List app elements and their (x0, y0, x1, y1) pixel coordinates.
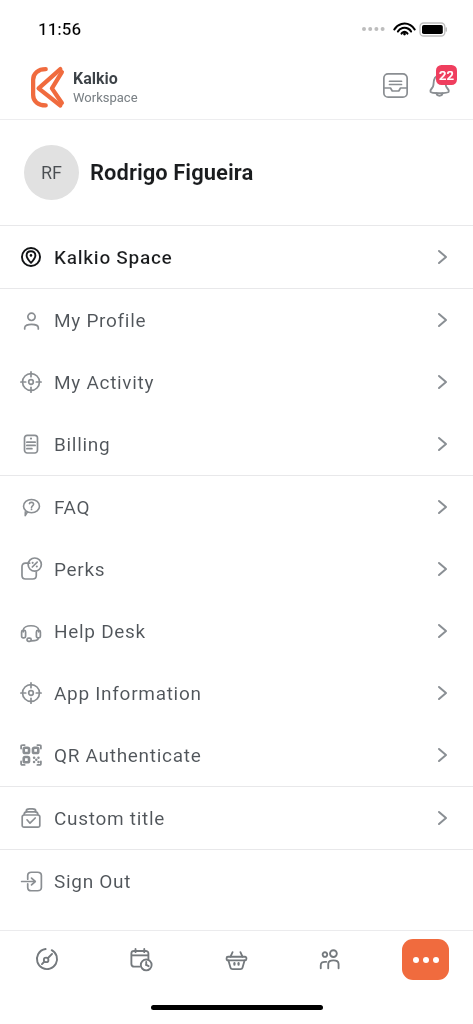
staticText: Perks (54, 558, 106, 580)
staticText: Kalkio (73, 69, 118, 88)
staticText: 22 (439, 68, 454, 83)
button[interactable]: Contacts (308, 934, 352, 984)
button[interactable]: Sign Out (0, 850, 473, 912)
button[interactable]: Custom title (0, 787, 473, 849)
button[interactable]: App Information (0, 662, 473, 724)
staticText: QR Authenticate (54, 744, 202, 766)
staticText: Custom title (54, 807, 166, 829)
button[interactable]: Schedule (119, 934, 163, 984)
staticText: 11:56 (38, 19, 82, 39)
button[interactable]: More (402, 939, 449, 980)
staticText: Billing (54, 433, 111, 455)
button[interactable]: QR Authenticate (0, 724, 473, 786)
button[interactable]: Notifications (428, 64, 458, 98)
staticText: App Information (54, 682, 202, 704)
button[interactable]: Dashboard (25, 934, 69, 984)
staticText: Rodrigo Figueira (90, 160, 254, 186)
button[interactable]: My Activity (0, 351, 473, 413)
button[interactable]: Shop (214, 934, 258, 984)
button[interactable]: Perks (0, 538, 473, 600)
button[interactable]: Kalkio Space (0, 226, 473, 288)
staticText: RF (41, 162, 63, 183)
staticText: Help Desk (54, 620, 146, 642)
button[interactable]: Inbox (383, 73, 408, 98)
staticText: Sign Out (54, 870, 132, 892)
staticText: My Profile (54, 309, 147, 331)
staticText: Workspace (73, 90, 138, 105)
staticText: FAQ (54, 496, 91, 518)
staticText: My Activity (54, 371, 155, 393)
button[interactable]: FAQ (0, 476, 473, 538)
button[interactable]: RF (0, 120, 473, 225)
button[interactable]: Billing (0, 413, 473, 475)
staticText: Kalkio Space (54, 246, 173, 268)
button[interactable]: My Profile (0, 289, 473, 351)
button[interactable]: Help Desk (0, 600, 473, 662)
